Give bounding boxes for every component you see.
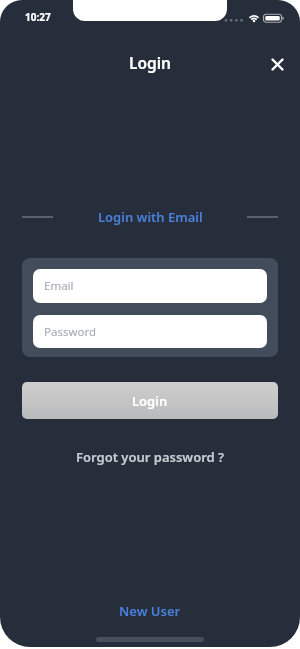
- staticText: 10:27: [25, 10, 51, 24]
- button[interactable]: Login: [22, 382, 278, 419]
- button[interactable]: Email: [33, 269, 267, 303]
- button[interactable]: [263, 50, 291, 78]
- button[interactable]: Password: [33, 315, 267, 348]
- staticText: Email: [44, 278, 74, 294]
- button[interactable]: New User: [119, 602, 181, 620]
- staticText: Login: [129, 52, 172, 73]
- staticText: Password: [44, 324, 97, 340]
- button[interactable]: Login with Email: [98, 208, 203, 226]
- button[interactable]: Forgot your password ?: [76, 448, 225, 466]
- staticText: Login: [132, 392, 168, 410]
